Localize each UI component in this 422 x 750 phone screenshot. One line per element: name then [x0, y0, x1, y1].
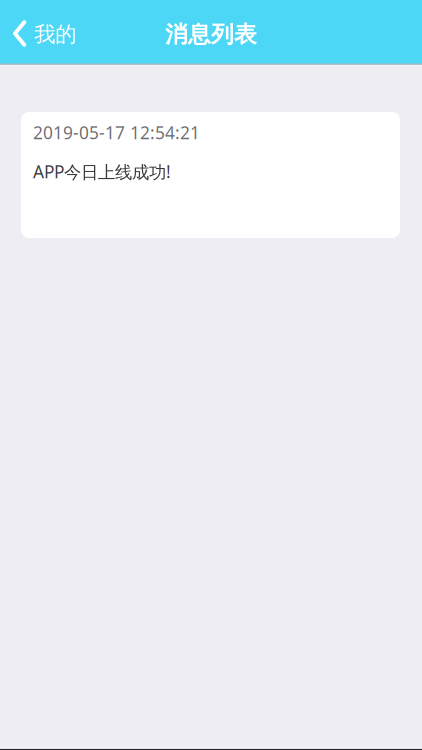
- staticText: 消息列表: [165, 21, 257, 48]
- button[interactable]: 我的: [0, 0, 88, 63]
- staticText: APP今日上线成功!: [33, 160, 171, 183]
- button[interactable]: 2019-05-17 12:54:21: [21, 112, 400, 238]
- staticText: 我的: [34, 21, 76, 48]
- staticText: 2019-05-17 12:54:21: [33, 121, 200, 144]
